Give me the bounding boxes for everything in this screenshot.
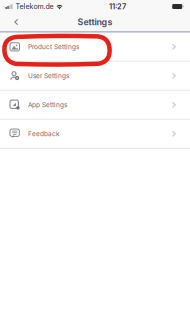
staticText: Product Settings: [28, 43, 79, 51]
staticText: Telekom.de: [15, 2, 53, 11]
staticText: Feedback: [28, 130, 60, 138]
button[interactable]: Back: [0, 13, 28, 31]
staticText: App Settings: [28, 101, 67, 109]
staticText: Settings: [77, 17, 112, 27]
button[interactable]: Feedback: [0, 120, 190, 149]
staticText: User Settings: [28, 72, 69, 80]
button[interactable]: Product Settings: [0, 33, 190, 62]
button[interactable]: User Settings: [0, 62, 190, 91]
staticText: 11:27: [109, 2, 126, 11]
button[interactable]: App Settings: [0, 91, 190, 120]
